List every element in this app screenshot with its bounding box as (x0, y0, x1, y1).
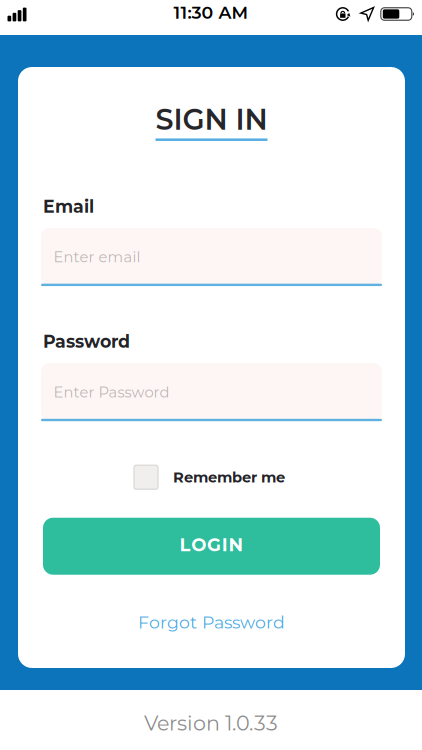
button[interactable]: Forgot Password (138, 612, 285, 633)
staticText: 11:30 AM (173, 2, 248, 23)
button[interactable]: Enter Password (41, 363, 382, 421)
staticText: Email (43, 196, 94, 217)
staticText: Remember me (173, 468, 285, 486)
staticText: SIGN IN (155, 102, 267, 137)
staticText: Enter Password (53, 383, 169, 401)
staticText: Forgot Password (138, 612, 285, 633)
staticText: LOGIN (179, 534, 244, 556)
button[interactable]: LOGIN (18, 518, 405, 575)
button[interactable]: Remember me (136, 465, 287, 489)
staticText: Enter email (53, 248, 140, 266)
staticText: Version 1.0.33 (144, 710, 278, 736)
button[interactable]: Enter email (41, 228, 382, 286)
staticText: Password (43, 331, 130, 352)
